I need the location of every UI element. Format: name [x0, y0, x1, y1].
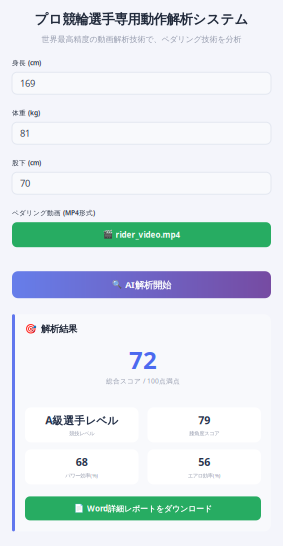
staticText: 🎯 — [25, 324, 37, 334]
staticText: ペダリング動画 (MP4形式) — [12, 208, 95, 217]
staticText: 股下 (cm) — [12, 158, 41, 167]
staticText: 体重 (kg) — [12, 108, 40, 117]
staticText: エアロ効率(%) — [188, 472, 221, 479]
staticText: 競技レベル — [69, 430, 94, 437]
staticText: 総合スコア / 100点満点 — [106, 376, 180, 385]
button[interactable]: 📄 — [25, 496, 261, 520]
staticText: 72 — [129, 344, 157, 376]
button[interactable]: 70 — [12, 172, 271, 194]
button[interactable]: 81 — [12, 122, 271, 144]
staticText: 79 — [198, 413, 210, 427]
staticText: プロ競輪選手専用動作解析システム — [34, 11, 248, 27]
staticText: 70 — [20, 177, 30, 189]
staticText: 解析結果 — [41, 323, 77, 335]
staticText: A級選手レベル — [45, 413, 118, 427]
button[interactable]: 🔍 — [12, 271, 271, 298]
staticText: AI解析開始 — [125, 278, 171, 291]
staticText: 🔍 — [112, 280, 122, 289]
staticText: 膝角度スコア — [189, 430, 219, 437]
button[interactable]: 🎬 — [12, 222, 271, 247]
staticText: 世界最高精度の動画解析技術で、ペダリング技術を分析 — [41, 34, 241, 44]
button[interactable]: 169 — [12, 72, 271, 94]
staticText: 📄 — [74, 504, 84, 513]
staticText: 🎬 — [102, 230, 112, 239]
staticText: 169 — [20, 77, 35, 89]
staticText: 身長 (cm) — [12, 58, 41, 67]
staticText: パワー効率(%) — [65, 472, 98, 479]
staticText: Word詳細レポートをダウンロード — [87, 503, 212, 514]
staticText: 56 — [198, 455, 210, 469]
staticText: rider_video.mp4 — [115, 229, 180, 240]
staticText: 68 — [76, 455, 88, 469]
staticText: 81 — [20, 127, 30, 139]
